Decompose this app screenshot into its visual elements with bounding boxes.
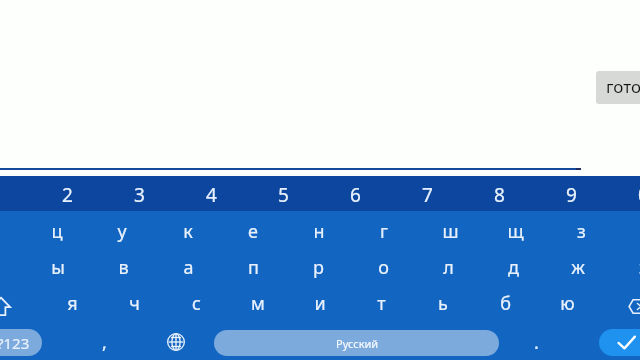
button[interactable]: и (289, 281, 351, 316)
button[interactable]: Enter (599, 329, 640, 356)
button[interactable]: ь (412, 281, 474, 316)
button[interactable]: е (222, 211, 284, 246)
staticText: з (577, 219, 586, 244)
button[interactable]: б (474, 281, 536, 316)
staticText: м (251, 291, 265, 316)
button[interactable]: Shift (0, 281, 32, 316)
button[interactable]: т (350, 281, 412, 316)
button[interactable]: Русский (214, 330, 499, 356)
button[interactable]: в (92, 246, 154, 281)
staticText: л (443, 255, 454, 280)
staticText: д (508, 255, 519, 280)
button[interactable]: д (482, 246, 544, 281)
button[interactable]: . (505, 316, 567, 360)
button[interactable]: а (157, 246, 219, 281)
button[interactable]: Switch language (154, 316, 198, 360)
button[interactable]: Backspace (607, 281, 640, 316)
button[interactable]: я (41, 281, 103, 316)
staticText: н (313, 219, 325, 244)
staticText: щ (507, 219, 524, 244)
button[interactable]: 7 (396, 176, 458, 211)
staticText: р (313, 255, 324, 280)
staticText: . (534, 330, 539, 355)
button[interactable]: к (157, 211, 219, 246)
staticText: 6 (350, 182, 361, 208)
staticText: Русский (336, 336, 379, 351)
staticText: 0 (638, 182, 640, 208)
staticText: а (183, 255, 194, 280)
button[interactable]: готово (596, 71, 640, 104)
staticText: ?123 (0, 333, 30, 353)
button[interactable]: з (550, 211, 612, 246)
button[interactable]: 4 (180, 176, 242, 211)
button[interactable]: 3 (108, 176, 170, 211)
button[interactable]: ?123 (0, 329, 42, 356)
staticText: 5 (278, 182, 289, 208)
staticText: к (183, 219, 193, 244)
button[interactable]: ц (26, 211, 88, 246)
button[interactable]: с (165, 281, 227, 316)
staticText: ц (51, 219, 63, 244)
button[interactable]: л (417, 246, 479, 281)
button[interactable]: , (73, 316, 135, 360)
button[interactable]: Text input field (0, 0, 640, 168)
staticText: о (378, 255, 389, 280)
button[interactable]: 0 (612, 176, 640, 211)
button[interactable]: п (222, 246, 284, 281)
button[interactable]: о (352, 246, 414, 281)
button[interactable]: ж (547, 246, 609, 281)
staticText: 4 (206, 182, 217, 208)
button[interactable]: н (288, 211, 350, 246)
button[interactable]: ю (536, 281, 598, 316)
button[interactable]: г (353, 211, 415, 246)
button[interactable]: 8 (468, 176, 530, 211)
staticText: 9 (566, 182, 577, 208)
button[interactable]: э (612, 246, 640, 281)
button[interactable]: у (91, 211, 153, 246)
staticText: ш (442, 219, 459, 244)
staticText: 7 (422, 182, 433, 208)
staticText: ь (438, 291, 448, 316)
staticText: г (380, 219, 388, 244)
staticText: 2 (62, 182, 73, 208)
staticText: ю (560, 291, 575, 316)
button[interactable]: ш (419, 211, 481, 246)
staticText: готово (606, 75, 640, 98)
staticText: э (639, 255, 640, 280)
button[interactable]: 5 (252, 176, 314, 211)
button[interactable]: 2 (36, 176, 98, 211)
staticText: ж (571, 255, 585, 280)
staticText: в (118, 255, 129, 280)
button[interactable]: р (287, 246, 349, 281)
staticText: б (500, 291, 511, 316)
staticText: 3 (134, 182, 145, 208)
staticText: с (192, 291, 201, 316)
staticText: и (314, 291, 326, 316)
staticText: п (248, 255, 259, 280)
staticText: е (248, 219, 258, 244)
button[interactable]: щ (484, 211, 546, 246)
button[interactable]: м (227, 281, 289, 316)
staticText: ы (51, 255, 65, 280)
staticText: ч (129, 291, 140, 316)
button[interactable]: 6 (324, 176, 386, 211)
staticText: т (377, 291, 386, 316)
staticText: я (67, 291, 78, 316)
button[interactable]: ы (27, 246, 89, 281)
staticText: , (102, 330, 107, 355)
button[interactable]: 9 (540, 176, 602, 211)
button[interactable]: ч (103, 281, 165, 316)
staticText: у (117, 219, 127, 244)
staticText: 8 (494, 182, 505, 208)
